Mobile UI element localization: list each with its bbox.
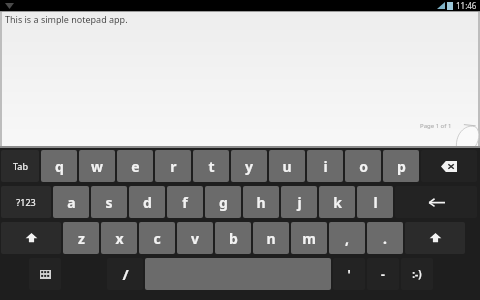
- button[interactable]: Shift: [405, 222, 465, 254]
- staticText: i: [323, 157, 328, 176]
- staticText: q: [55, 157, 64, 176]
- staticText: -: [381, 266, 385, 282]
- staticText: ,: [345, 229, 349, 248]
- button[interactable]: Change keyboard: [29, 258, 61, 290]
- staticText: t: [208, 157, 215, 176]
- button[interactable]: /: [107, 258, 143, 290]
- button[interactable]: Enter: [395, 186, 477, 218]
- staticText: Tab: [13, 160, 28, 172]
- staticText: ?123: [16, 196, 36, 208]
- button[interactable]: ': [333, 258, 365, 290]
- staticText: w: [91, 157, 103, 176]
- button[interactable]: Tab: [1, 150, 39, 182]
- staticText: j: [297, 193, 302, 212]
- button[interactable]: d: [129, 186, 165, 218]
- button[interactable]: n: [253, 222, 289, 254]
- staticText: b: [229, 229, 238, 248]
- staticText: f: [182, 193, 188, 212]
- staticText: c: [153, 229, 161, 248]
- staticText: x: [115, 229, 124, 248]
- staticText: o: [359, 157, 368, 176]
- button[interactable]: q: [41, 150, 77, 182]
- button[interactable]: o: [345, 150, 381, 182]
- button[interactable]: h: [243, 186, 279, 218]
- button[interactable]: s: [91, 186, 127, 218]
- button[interactable]: y: [231, 150, 267, 182]
- button[interactable]: e: [117, 150, 153, 182]
- button[interactable]: t: [193, 150, 229, 182]
- staticText: k: [333, 193, 342, 212]
- staticText: p: [397, 157, 406, 176]
- button[interactable]: .: [367, 222, 403, 254]
- button[interactable]: v: [177, 222, 213, 254]
- staticText: .: [383, 229, 387, 248]
- staticText: v: [191, 229, 199, 248]
- button[interactable]: m: [291, 222, 327, 254]
- staticText: l: [373, 193, 378, 212]
- button[interactable]: This is a simple notepad app.: [0, 11, 480, 148]
- button[interactable]: c: [139, 222, 175, 254]
- button[interactable]: Shift: [1, 222, 61, 254]
- staticText: ': [347, 266, 351, 282]
- staticText: /: [122, 264, 129, 284]
- staticText: r: [170, 157, 177, 176]
- staticText: y: [245, 157, 253, 176]
- button[interactable]: ,: [329, 222, 365, 254]
- button[interactable]: i: [307, 150, 343, 182]
- button[interactable]: g: [205, 186, 241, 218]
- button[interactable]: -: [367, 258, 399, 290]
- staticText: g: [219, 193, 228, 212]
- button[interactable]: b: [215, 222, 251, 254]
- button[interactable]: k: [319, 186, 355, 218]
- button[interactable]: a: [53, 186, 89, 218]
- button[interactable]: l: [357, 186, 393, 218]
- button[interactable]: ?123: [1, 186, 51, 218]
- staticText: e: [131, 157, 140, 176]
- button[interactable]: x: [101, 222, 137, 254]
- staticText: n: [266, 229, 276, 248]
- staticText: This is a simple notepad app.: [5, 13, 128, 25]
- staticText: h: [256, 193, 266, 212]
- button[interactable]: j: [281, 186, 317, 218]
- button[interactable]: u: [269, 150, 305, 182]
- staticText: 11:46: [456, 0, 477, 11]
- staticText: z: [78, 229, 85, 248]
- button[interactable]: Backspace: [421, 150, 477, 182]
- button[interactable]: p: [383, 150, 419, 182]
- staticText: :-): [412, 267, 422, 281]
- staticText: u: [282, 157, 292, 176]
- staticText: d: [143, 193, 152, 212]
- staticText: s: [105, 193, 113, 212]
- staticText: Page 1 of 1: [420, 122, 452, 130]
- button[interactable]: r: [155, 150, 191, 182]
- staticText: m: [302, 229, 316, 248]
- button[interactable]: w: [79, 150, 115, 182]
- staticText: a: [67, 193, 76, 212]
- button[interactable]: f: [167, 186, 203, 218]
- button[interactable]: :-): [401, 258, 433, 290]
- button[interactable]: z: [63, 222, 99, 254]
